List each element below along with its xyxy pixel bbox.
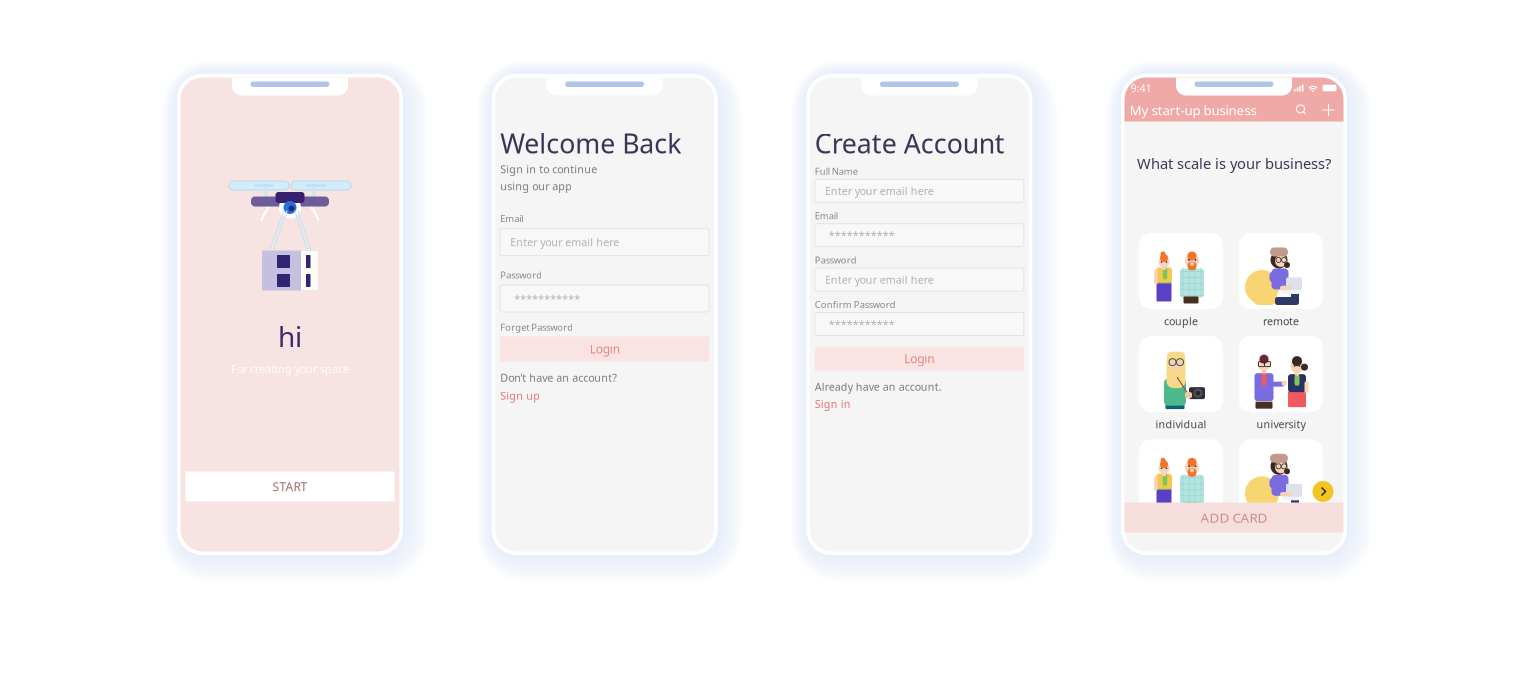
staticText: Sign in (815, 397, 851, 411)
button[interactable]: Login (815, 346, 1024, 370)
button[interactable]: Add (1320, 102, 1336, 118)
staticText: Sign in to continue (500, 162, 597, 176)
staticText: couple (1164, 314, 1198, 328)
staticText: using our app (500, 179, 572, 193)
staticText: individual (1155, 417, 1206, 431)
staticText: Enter your email here (825, 272, 934, 287)
staticText: Email (815, 209, 838, 222)
staticText: Login (590, 341, 620, 357)
staticText: Already have an account. (815, 379, 942, 394)
staticText: university (1256, 417, 1305, 431)
staticText: My start-up business (1129, 101, 1256, 119)
staticText: What scale is your business? (1137, 153, 1331, 173)
staticText: ADD CARD (1200, 509, 1267, 526)
staticText: *********** (829, 317, 895, 331)
staticText: Login (904, 350, 934, 366)
staticText: Password (500, 269, 542, 281)
staticText: Forget Password (500, 321, 573, 333)
staticText: Sign up (500, 389, 540, 403)
staticText: Email (500, 212, 523, 225)
staticText: Confirm Password (815, 298, 896, 310)
button[interactable]: individual (1139, 336, 1223, 431)
staticText: Enter your email here (510, 235, 619, 249)
button[interactable]: university (1239, 336, 1323, 431)
staticText: Create Account (815, 125, 1005, 161)
staticText: 9:41 (1130, 81, 1151, 95)
staticText: Full Name (815, 165, 858, 177)
staticText: Welcome Back (500, 125, 681, 161)
staticText: For creating your space (231, 362, 349, 376)
button[interactable]: Login (500, 336, 709, 361)
button[interactable]: Search (1293, 102, 1309, 118)
button[interactable]: START (185, 471, 394, 501)
staticText: *********** (829, 228, 895, 242)
button[interactable]: remote (1239, 233, 1323, 328)
button[interactable]: Sign up (500, 389, 540, 403)
staticText: Don't have an account? (500, 370, 617, 385)
staticText: hi (278, 317, 302, 355)
staticText: Enter your email here (825, 184, 934, 198)
staticText: Password (815, 254, 857, 266)
staticText: *********** (514, 291, 580, 306)
staticText: START (272, 478, 307, 494)
staticText: remote (1263, 314, 1299, 328)
button[interactable]: Next (1312, 481, 1333, 502)
button[interactable]: Sign in (815, 397, 851, 411)
button[interactable]: couple (1139, 233, 1223, 328)
button[interactable]: ADD CARD (1124, 502, 1343, 532)
